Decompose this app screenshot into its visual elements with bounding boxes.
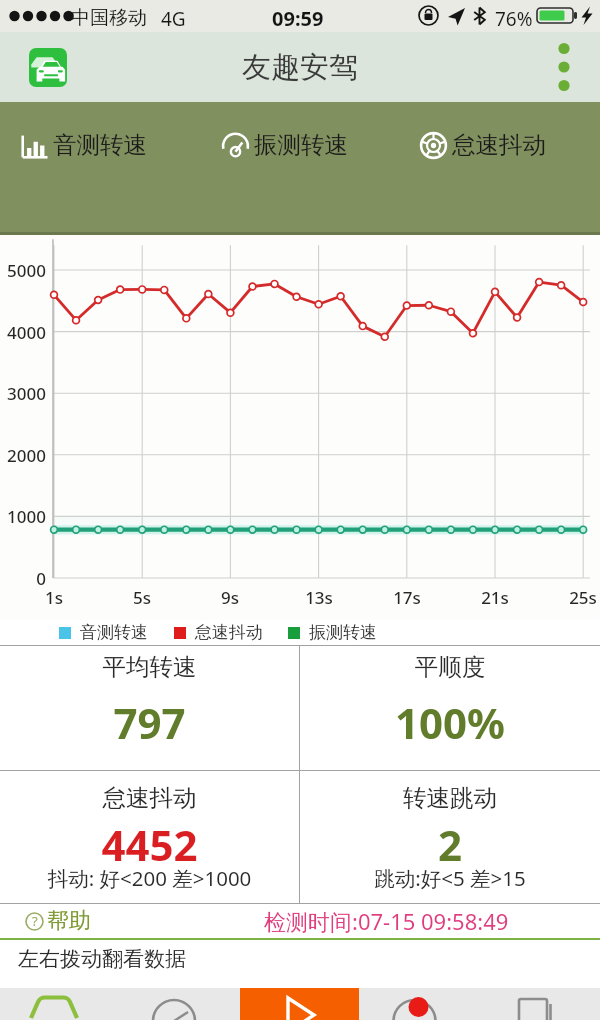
button[interactable]: More options — [542, 45, 586, 89]
staticText: 抖动: 好<200 差>1000 — [0, 864, 299, 892]
staticText: 怠速抖动 — [452, 130, 546, 160]
button[interactable]: App logo — [29, 48, 67, 87]
button[interactable]: 振测转速 — [220, 126, 348, 164]
staticText: 检测时间:07-15 09:58:49 — [264, 906, 509, 936]
staticText: 4000 — [0, 321, 46, 344]
staticText: 0 — [0, 567, 46, 590]
button[interactable]: Detect — [120, 988, 240, 1020]
staticText: 1000 — [0, 505, 46, 528]
button[interactable]: 平顺度 — [300, 645, 600, 770]
staticText: 平均转速 — [0, 652, 299, 682]
button[interactable]: 音测转速 — [59, 620, 148, 645]
button[interactable]: Reports — [359, 988, 479, 1020]
staticText: 100% — [300, 694, 600, 751]
staticText: 帮助 — [47, 907, 91, 935]
staticText: 1s — [34, 586, 74, 609]
button[interactable]: 平均转速 — [0, 645, 299, 770]
staticText: ? — [32, 912, 38, 930]
staticText: 25s — [563, 586, 600, 609]
staticText: 振测转速 — [254, 130, 348, 160]
button[interactable]: ? — [25, 907, 91, 935]
staticText: 5s — [122, 586, 162, 609]
staticText: 2 — [300, 816, 600, 873]
staticText: 5000 — [0, 259, 46, 282]
staticText: 怠速抖动 — [0, 783, 299, 813]
staticText: 2000 — [0, 444, 46, 467]
button[interactable]: 音测转速 — [19, 126, 147, 164]
staticText: 21s — [475, 586, 515, 609]
staticText: 76% — [495, 6, 533, 32]
staticText: 797 — [0, 694, 299, 751]
staticText: 中国移动 — [71, 6, 147, 30]
staticText: 怠速抖动 — [195, 622, 263, 643]
button[interactable]: 转速跳动 — [300, 771, 600, 903]
staticText: 跳动:好<5 差>15 — [300, 864, 600, 892]
staticText: 13s — [299, 586, 339, 609]
staticText: 4452 — [0, 816, 299, 873]
button[interactable]: 怠速抖动 — [174, 620, 263, 645]
button[interactable]: 振测转速 — [288, 620, 377, 645]
staticText: 平顺度 — [300, 652, 600, 682]
staticText: 音测转速 — [80, 622, 148, 643]
button[interactable]: Vehicle — [0, 988, 120, 1020]
button[interactable]: Start test — [240, 988, 359, 1020]
staticText: 左右拨动翻看数据 — [18, 946, 186, 972]
staticText: 09:59 — [272, 5, 324, 32]
staticText: 17s — [387, 586, 427, 609]
button[interactable]: Profile — [479, 988, 600, 1020]
staticText: 转速跳动 — [300, 783, 600, 813]
staticText: 4G — [161, 6, 186, 32]
staticText: 音测转速 — [53, 130, 147, 160]
button[interactable]: 怠速抖动 — [418, 126, 546, 164]
staticText: 友趣安驾 — [242, 49, 358, 86]
button[interactable]: 怠速抖动 — [0, 771, 299, 903]
staticText: 振测转速 — [309, 622, 377, 643]
staticText: 9s — [210, 586, 250, 609]
staticText: 3000 — [0, 382, 46, 405]
